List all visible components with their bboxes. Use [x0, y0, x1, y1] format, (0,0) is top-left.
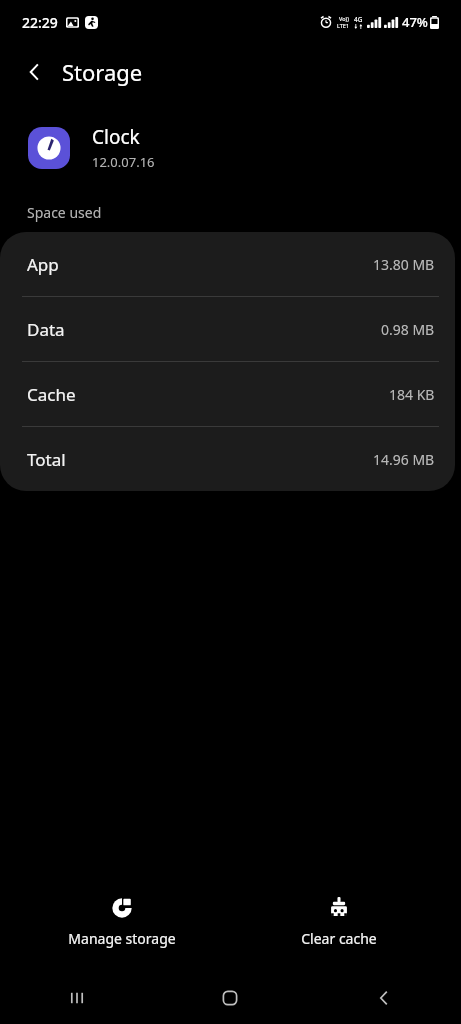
staticText: 14.96 MB — [373, 450, 435, 469]
button[interactable]: App — [0, 232, 455, 296]
button[interactable]: Back — [18, 55, 52, 89]
staticText: 47% — [402, 13, 428, 31]
button[interactable]: Home — [153, 972, 307, 1024]
staticText: Storage — [62, 57, 143, 87]
button[interactable]: Total — [0, 427, 455, 491]
staticText: App — [27, 253, 373, 276]
staticText: Vo)) — [339, 15, 349, 22]
button[interactable]: Recents — [0, 972, 153, 1024]
button[interactable]: Data — [0, 297, 455, 361]
staticText: LTE1 — [337, 22, 350, 29]
staticText: 13.80 MB — [373, 255, 435, 274]
button[interactable]: Cache — [0, 362, 455, 426]
button[interactable]: Back — [307, 972, 461, 1024]
staticText: Space used — [27, 203, 102, 222]
staticText: Total — [27, 448, 373, 471]
staticText: 0.98 MB — [381, 320, 435, 339]
button[interactable]: Manage storage — [27, 891, 217, 954]
staticText: Data — [27, 318, 381, 341]
staticText: Clear cache — [301, 929, 377, 948]
staticText: Clock — [92, 124, 140, 150]
staticText: Cache — [27, 383, 389, 406]
staticText: 12.0.07.16 — [92, 153, 155, 171]
staticText: 4G — [354, 15, 363, 24]
button[interactable]: Clear cache — [244, 891, 434, 954]
staticText: 184 KB — [389, 385, 435, 404]
staticText: Manage storage — [68, 929, 176, 948]
staticText: 22:29 — [22, 13, 58, 32]
